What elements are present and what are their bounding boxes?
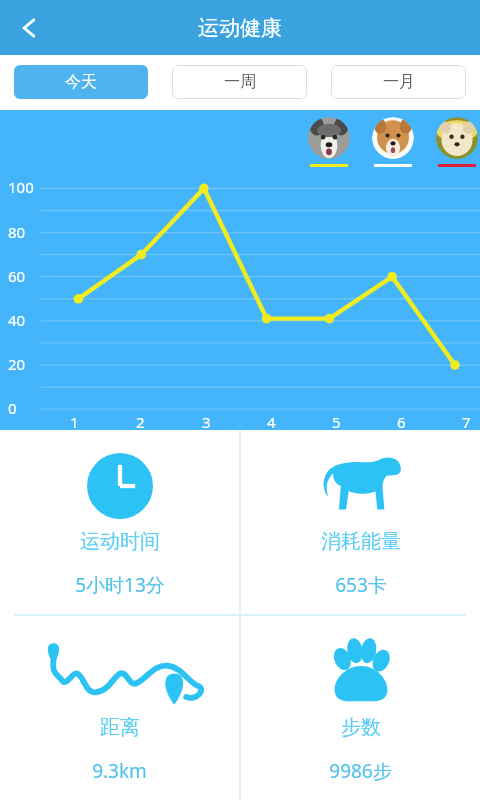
staticText: 距离 — [100, 715, 140, 740]
staticText: 7 — [462, 412, 471, 432]
staticText: 0 — [8, 398, 17, 418]
button[interactable]: Back — [6, 5, 52, 51]
staticText: 6 — [397, 412, 406, 432]
staticText: 9.3km — [92, 758, 147, 784]
staticText: 今天 — [65, 72, 97, 92]
button[interactable]: 消耗能量 — [241, 430, 480, 614]
button[interactable]: 一月 — [331, 65, 466, 99]
staticText: 2 — [136, 412, 145, 432]
staticText: 一月 — [383, 72, 415, 92]
staticText: 4 — [267, 412, 276, 432]
staticText: 20 — [8, 354, 26, 374]
button[interactable]: 一周 — [172, 65, 307, 99]
button[interactable]: 运动时间 — [0, 430, 239, 614]
staticText: 步数 — [341, 715, 381, 740]
staticText: 100 — [8, 177, 34, 197]
staticText: 一周 — [224, 72, 256, 92]
button[interactable]: Select dog 3 — [436, 117, 478, 167]
staticText: 60 — [8, 266, 26, 286]
staticText: 3 — [202, 412, 211, 432]
staticText: 运动时间 — [80, 529, 160, 554]
button[interactable]: Select dog 1 — [308, 117, 350, 167]
button[interactable]: Select dog 2 — [372, 117, 414, 167]
staticText: 5 — [332, 412, 341, 432]
button[interactable]: 距离 — [0, 616, 239, 800]
staticText: 消耗能量 — [321, 529, 401, 554]
staticText: 80 — [8, 222, 26, 242]
staticText: 1 — [70, 412, 79, 432]
staticText: 40 — [8, 310, 26, 330]
staticText: 9986步 — [329, 758, 392, 784]
staticText: 运动健康 — [198, 15, 282, 41]
staticText: 653卡 — [335, 572, 387, 598]
button[interactable]: 步数 — [241, 616, 480, 800]
button[interactable]: 今天 — [14, 65, 148, 99]
staticText: 5小时13分 — [75, 572, 165, 598]
